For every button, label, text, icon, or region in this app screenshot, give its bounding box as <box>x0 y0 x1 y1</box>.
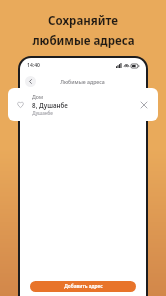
staticText: любимые адреса <box>32 33 135 49</box>
staticText: Дом <box>32 93 43 100</box>
other: Favorite <box>16 100 25 109</box>
staticText: Добавить адрес <box>64 283 103 290</box>
button[interactable]: Favorite <box>8 88 158 121</box>
staticText: 14:40 <box>27 62 40 69</box>
button[interactable]: Remove <box>138 99 150 111</box>
button[interactable]: Добавить адрес <box>30 281 136 292</box>
staticText: Любимые адреса <box>60 78 105 85</box>
button[interactable]: Back <box>25 76 36 87</box>
staticText: Душанбе <box>32 110 53 116</box>
staticText: 8, Душанбе <box>32 101 68 109</box>
staticText: Сохраняйте <box>48 13 118 29</box>
